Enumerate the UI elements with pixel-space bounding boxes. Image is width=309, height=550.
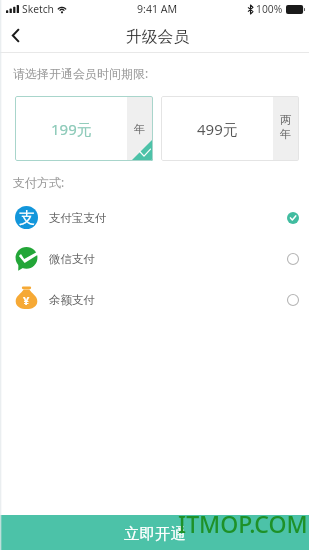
staticText: 199元: [51, 119, 92, 139]
staticText: 微信支付: [49, 252, 95, 266]
staticText: 支付宝支付: [49, 211, 107, 225]
staticText: 请选择开通会员时间期限:: [13, 65, 149, 81]
staticText: Sketch: [22, 2, 54, 16]
button[interactable]: 支: [0, 197, 309, 238]
button[interactable]: 微信支付: [0, 238, 309, 279]
button[interactable]: ¥: [0, 279, 309, 320]
staticText: ITMOP.COM: [178, 508, 308, 539]
staticText: 支: [19, 208, 35, 228]
button[interactable]: 499元: [161, 96, 299, 161]
staticText: 9:41 AM: [137, 2, 178, 16]
staticText: 升级会员: [126, 27, 190, 47]
staticText: 立即开通: [124, 524, 186, 544]
staticText: ¥: [23, 293, 30, 308]
staticText: 年: [280, 127, 292, 141]
staticText: 两: [280, 113, 292, 127]
staticText: 499元: [197, 119, 238, 139]
staticText: 年: [134, 122, 146, 136]
button[interactable]: Back: [0, 18, 32, 53]
staticText: 余额支付: [49, 293, 95, 307]
button[interactable]: 立即开通: [0, 515, 309, 550]
staticText: 支付方式:: [13, 174, 65, 190]
staticText: 100%: [256, 2, 283, 16]
button[interactable]: 199元: [15, 96, 153, 161]
